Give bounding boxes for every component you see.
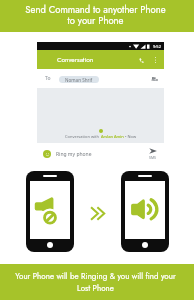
button[interactable]: Send SMS	[149, 148, 157, 160]
staticText: 9:52	[153, 44, 161, 49]
staticText: Send Command to anyother Phone to your P…	[25, 3, 166, 28]
staticText: Conversation with	[65, 134, 101, 139]
button[interactable]: More options	[150, 55, 160, 65]
staticText: SMS	[149, 155, 157, 160]
button[interactable]: Silent phone	[26, 171, 74, 252]
staticText: Noman Shrif	[65, 77, 93, 83]
button[interactable]: Add contact	[149, 74, 159, 84]
button[interactable]: Ringing phone	[121, 171, 169, 252]
staticText: Conversation	[57, 55, 94, 65]
staticText: To	[45, 75, 51, 82]
button[interactable]: Call	[136, 55, 146, 65]
staticText: Your Phone will be Ringing & you will fi…	[15, 270, 176, 294]
staticText: • Now	[124, 134, 137, 139]
staticText: Ring my phone	[56, 151, 92, 158]
staticText: Arslan Amin	[101, 134, 124, 139]
